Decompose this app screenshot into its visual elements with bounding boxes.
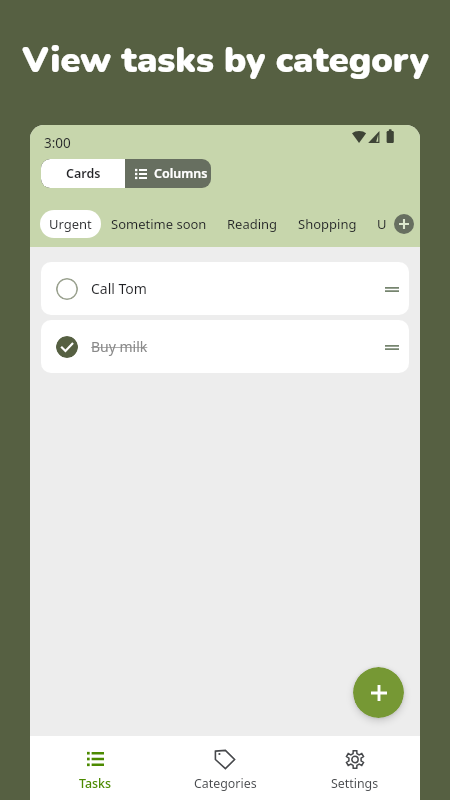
staticText: Reading	[227, 215, 278, 233]
button[interactable]: Mark incomplete	[56, 336, 78, 358]
staticText: Sometime soon	[111, 215, 207, 233]
button[interactable]: Reorder	[381, 278, 403, 300]
staticText: Urgent	[49, 215, 92, 233]
staticText: Settings	[331, 775, 379, 792]
button[interactable]: Add task	[353, 667, 404, 718]
button[interactable]: Mark incomplete	[41, 320, 409, 373]
button[interactable]: Shopping	[288, 210, 367, 238]
button[interactable]: Mark complete	[41, 262, 409, 315]
staticText: 3:00	[44, 134, 71, 152]
staticText: Categories	[194, 775, 257, 792]
button[interactable]: Unsorted	[367, 210, 389, 238]
button[interactable]: Reading	[217, 210, 288, 238]
staticText: Tasks	[79, 775, 112, 792]
button[interactable]: Mark complete	[56, 278, 78, 300]
button[interactable]: Add category	[394, 214, 414, 234]
button[interactable]: Tasks	[30, 736, 160, 800]
button[interactable]: Cards	[41, 159, 125, 188]
staticText: Call Tom	[91, 279, 147, 298]
staticText: Buy milk	[91, 337, 148, 356]
staticText: Cards	[66, 165, 101, 182]
staticText: View tasks by category	[22, 36, 430, 85]
button[interactable]: Categories	[160, 736, 290, 800]
button[interactable]: Settings	[290, 736, 420, 800]
staticText: Columns	[154, 165, 208, 182]
button[interactable]: Columns	[125, 159, 211, 188]
button[interactable]: Sometime soon	[101, 210, 217, 238]
button[interactable]: Urgent	[40, 210, 101, 238]
staticText: Shopping	[298, 215, 357, 233]
staticText: Unsorted	[377, 215, 379, 233]
button[interactable]: Reorder	[381, 336, 403, 358]
